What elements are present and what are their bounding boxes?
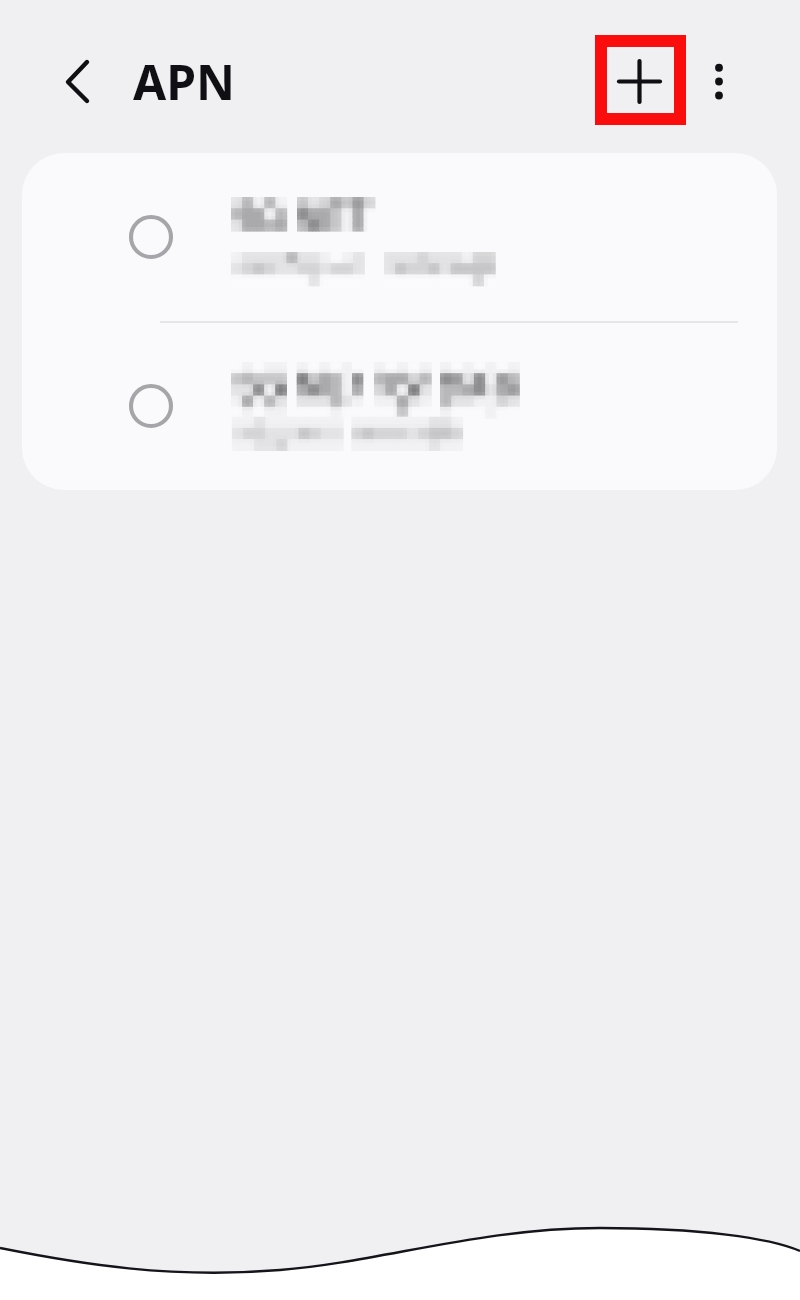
button[interactable] — [22, 153, 777, 322]
button[interactable]: Add APN — [595, 35, 686, 125]
button[interactable]: Navigate up — [42, 48, 110, 116]
button[interactable] — [22, 322, 777, 490]
button[interactable]: More options — [685, 48, 753, 116]
staticText: APN — [133, 49, 236, 114]
